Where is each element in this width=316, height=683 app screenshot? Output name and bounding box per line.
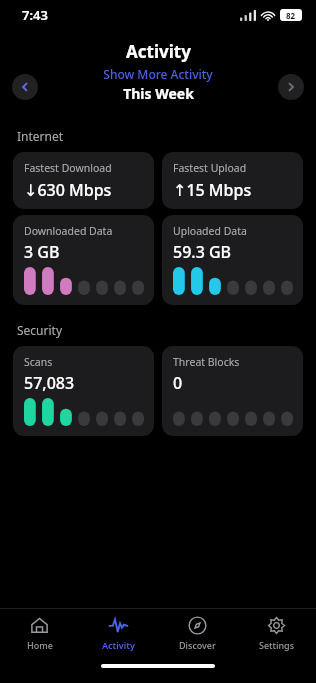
- staticText: Uploaded Data: [173, 224, 247, 238]
- staticText: Fastest Upload: [173, 161, 247, 175]
- staticText: Threat Blocks: [173, 355, 240, 369]
- button[interactable]: Activity: [79, 609, 158, 661]
- staticText: ↑15 Mbps: [173, 179, 252, 201]
- staticText: Fastest Download: [24, 161, 112, 175]
- button[interactable]: Threat Blocks: [162, 346, 303, 436]
- button[interactable]: Uploaded Data: [162, 215, 303, 305]
- staticText: 59.3 GB: [173, 241, 232, 263]
- button[interactable]: Discover: [158, 609, 237, 661]
- staticText: 3 GB: [24, 241, 60, 263]
- button[interactable]: Home: [0, 609, 79, 661]
- staticText: 0: [173, 372, 183, 394]
- button[interactable]: Next week: [278, 74, 304, 100]
- button[interactable]: Show More Activity: [103, 66, 213, 82]
- staticText: Downloaded Data: [24, 224, 113, 238]
- staticText: Settings: [259, 639, 295, 651]
- staticText: Activity: [126, 40, 191, 63]
- staticText: Discover: [179, 639, 216, 651]
- staticText: 7:43: [22, 6, 48, 24]
- button[interactable]: Settings: [237, 609, 316, 661]
- button[interactable]: Downloaded Data: [13, 215, 154, 305]
- staticText: Activity: [102, 639, 135, 651]
- button[interactable]: Fastest Upload: [162, 152, 303, 209]
- staticText: Security: [17, 322, 63, 338]
- staticText: 57,083: [24, 372, 75, 394]
- button[interactable]: Previous week: [12, 74, 38, 100]
- button[interactable]: Fastest Download: [13, 152, 154, 209]
- staticText: 82: [286, 10, 296, 21]
- staticText: Internet: [17, 128, 64, 144]
- staticText: This Week: [123, 84, 194, 103]
- button[interactable]: Scans: [13, 346, 154, 436]
- staticText: Show More Activity: [103, 66, 213, 82]
- staticText: Home: [27, 639, 53, 651]
- staticText: ↓630 Mbps: [24, 179, 112, 201]
- staticText: Scans: [24, 355, 53, 369]
